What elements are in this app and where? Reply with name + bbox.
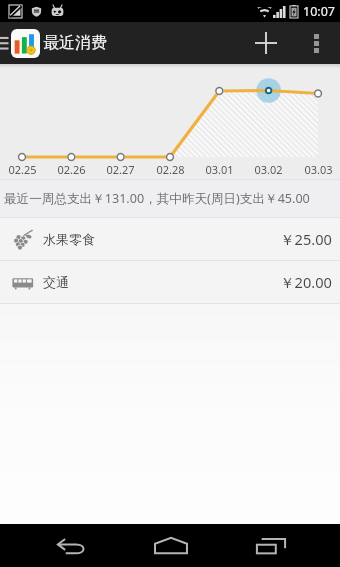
staticText: 02.25 [8, 162, 37, 177]
staticText: ￥20.00 [280, 272, 332, 292]
staticText: 03.01 [205, 162, 234, 177]
staticText: 最近一周总支出￥131.00，其中昨天(周日)支出￥45.00 [4, 190, 310, 207]
staticText: 02.26 [57, 162, 86, 177]
staticText: 水果零食 [43, 231, 95, 247]
staticText: 最近消费 [43, 33, 107, 53]
button[interactable]: Add [240, 22, 292, 64]
button[interactable]: 水果零食 [0, 218, 340, 260]
staticText: 10:07 [303, 3, 335, 20]
staticText: 02.27 [106, 162, 135, 177]
button[interactable]: Recent apps [221, 524, 321, 567]
staticText: 交通 [43, 274, 69, 290]
button[interactable]: 交通 [0, 261, 340, 303]
staticText: 03.03 [304, 162, 333, 177]
button[interactable]: More options [292, 22, 340, 64]
button[interactable]: Home [121, 524, 221, 567]
button[interactable]: Back [21, 524, 121, 567]
button[interactable]: Navigate up [0, 22, 40, 64]
staticText: 03.02 [254, 162, 283, 177]
staticText: 02.28 [156, 162, 185, 177]
staticText: ￥25.00 [280, 229, 332, 249]
